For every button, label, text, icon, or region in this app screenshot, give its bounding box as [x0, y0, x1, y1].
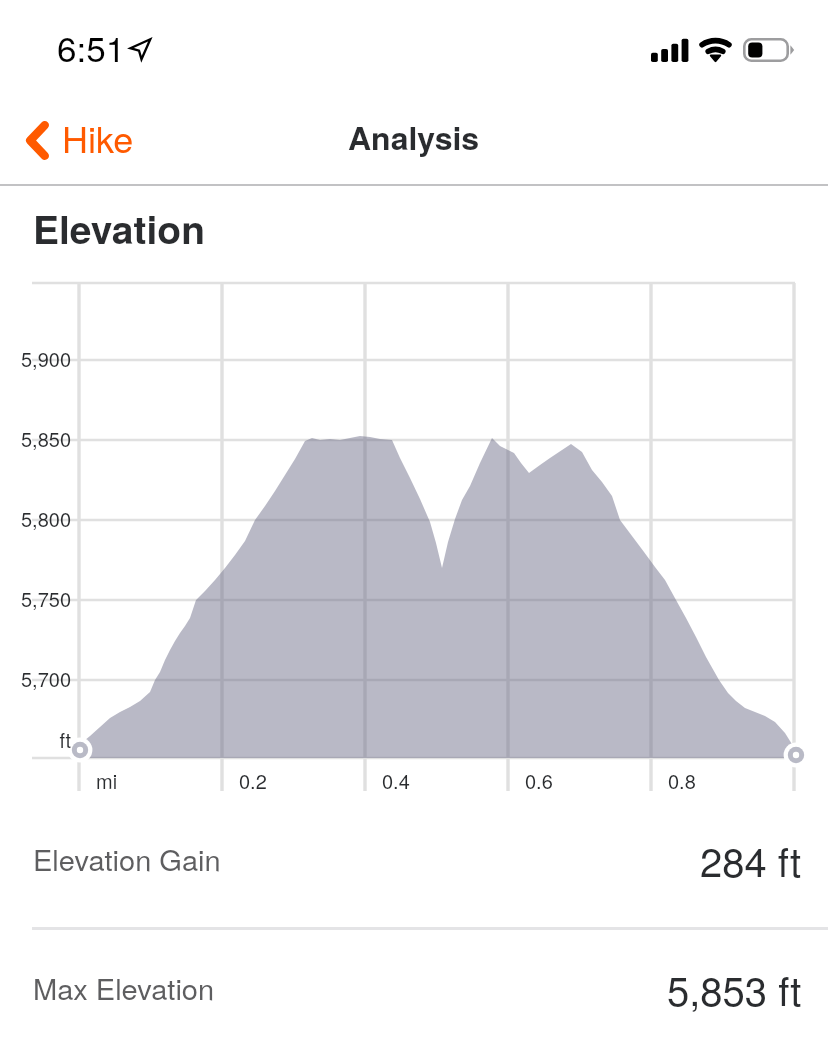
staticText: 5,750	[0, 584, 71, 613]
staticText: 0.4	[382, 766, 410, 795]
button[interactable]: Back to Hike	[0, 105, 152, 175]
staticText: 5,800	[0, 504, 71, 533]
staticText: 5,700	[0, 664, 71, 693]
staticText: 0.6	[525, 766, 553, 795]
staticText: 5,900	[0, 344, 71, 373]
staticText: Elevation Gain	[33, 838, 221, 880]
staticText: Elevation	[33, 200, 206, 256]
button[interactable]: Elevation Gain	[0, 812, 828, 906]
staticText: 0.8	[668, 766, 696, 795]
staticText: Analysis	[348, 114, 480, 160]
staticText: ft	[0, 725, 71, 754]
staticText: Max Elevation	[33, 967, 215, 1009]
staticText: mi	[96, 766, 118, 795]
staticText: 6:51	[57, 22, 126, 72]
button[interactable]: Max Elevation	[0, 941, 828, 1035]
staticText: Hike	[62, 112, 134, 164]
staticText: 0.2	[239, 766, 267, 795]
staticText: 5,850	[0, 424, 71, 453]
staticText: 5,853 ft	[667, 960, 802, 1017]
staticText: 284 ft	[700, 831, 802, 888]
